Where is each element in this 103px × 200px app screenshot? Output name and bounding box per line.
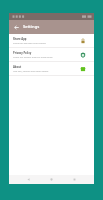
staticText: Privacy Policy — [13, 51, 32, 55]
staticText: Settings — [23, 24, 40, 30]
button[interactable]: Privacy Policy — [9, 48, 94, 62]
staticText: Check our privacy policy to know more — [13, 56, 53, 59]
staticText: Share this app with your friends — [13, 42, 46, 45]
button[interactable]: Back — [12, 23, 20, 31]
button[interactable]: Share App — [9, 34, 94, 48]
staticText: Share App — [13, 37, 27, 41]
button[interactable]: About — [9, 62, 94, 76]
staticText: About — [13, 65, 22, 69]
button[interactable]: Back — [25, 176, 32, 183]
button[interactable]: Recents — [71, 176, 78, 183]
button[interactable]: Home — [48, 176, 55, 183]
staticText: App info, version and other details — [13, 70, 49, 73]
